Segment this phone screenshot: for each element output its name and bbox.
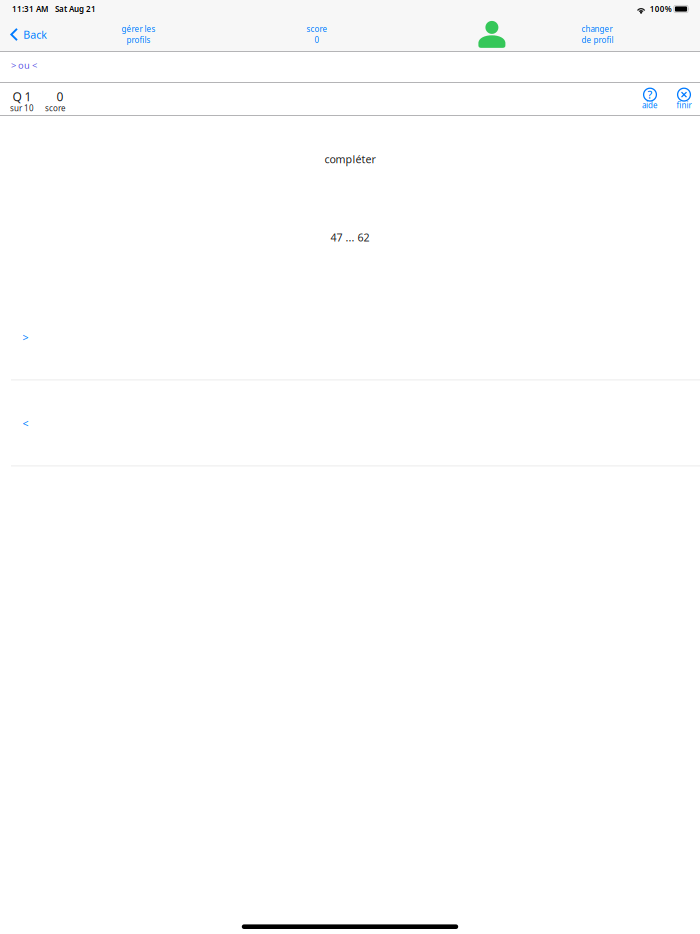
staticText: 11:31 AM xyxy=(12,4,48,14)
button[interactable]: ? xyxy=(635,87,665,110)
staticText: de profil xyxy=(581,35,613,45)
staticText: > xyxy=(22,330,28,344)
staticText: compléter xyxy=(324,152,375,166)
staticText: ? xyxy=(647,87,652,102)
staticText: aide xyxy=(642,100,658,110)
staticText: gérer les xyxy=(121,24,155,34)
staticText: Sat Aug 21 xyxy=(55,4,96,14)
staticText: sur 10 xyxy=(10,103,34,113)
button[interactable]: changer xyxy=(581,24,613,45)
staticText: 0 xyxy=(56,88,63,104)
staticText: 100% xyxy=(650,4,672,14)
staticText: changer xyxy=(581,24,612,34)
staticText: 47 ... 62 xyxy=(330,230,369,244)
button[interactable]: gérer les xyxy=(121,24,155,45)
staticText: 0 xyxy=(314,35,319,45)
staticText: Q 1 xyxy=(12,88,31,104)
button[interactable]: finir xyxy=(669,87,699,110)
staticText: Back xyxy=(23,27,47,42)
staticText: profils xyxy=(126,35,150,45)
staticText: score xyxy=(306,24,327,34)
staticText: < xyxy=(22,416,28,430)
button[interactable]: Back xyxy=(7,21,50,48)
staticText: score xyxy=(45,103,66,113)
staticText: finir xyxy=(676,100,691,110)
staticText: > ou < xyxy=(11,59,37,71)
